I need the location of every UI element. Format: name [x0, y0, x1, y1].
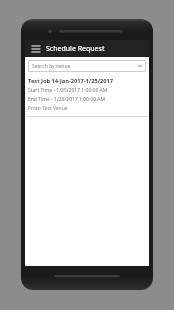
- button[interactable]: Search by venue: [28, 60, 146, 72]
- staticText: Schedule Request: [46, 44, 105, 54]
- staticText: Start Time - 1/25/2017 1:00:00 AM: [28, 87, 108, 94]
- staticText: Proto Test Venue: [28, 105, 68, 112]
- staticText: End Time - 1/26/2017 1:00:00 AM: [28, 96, 106, 103]
- staticText: Test Job 14-Jan-2017-1/25/2017: [28, 77, 114, 85]
- button[interactable]: Open navigation menu: [29, 42, 42, 55]
- staticText: Search by venue: [32, 63, 71, 70]
- button[interactable]: Test Job 14-Jan-2017-1/25/2017: [25, 76, 149, 116]
